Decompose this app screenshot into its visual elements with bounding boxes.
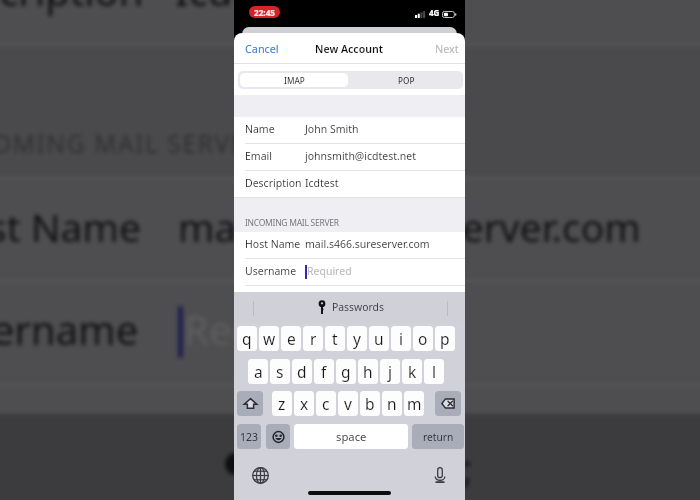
button[interactable]: r (303, 326, 323, 351)
button[interactable]: z (272, 391, 292, 416)
button[interactable]: c (316, 391, 336, 416)
button[interactable]: a (248, 359, 268, 384)
staticText: i (399, 328, 403, 349)
button[interactable]: POP (350, 71, 463, 89)
staticText: Cancel (245, 41, 279, 56)
staticText: b (365, 393, 375, 414)
button[interactable]: Cancel (240, 33, 298, 64)
button[interactable]: Emoji (266, 424, 290, 449)
staticText: Email (245, 149, 272, 163)
staticText: New Account (315, 42, 384, 56)
staticText: h (363, 361, 373, 382)
button[interactable]: u (369, 326, 389, 351)
button[interactable]: Change keyboard (250, 465, 271, 486)
staticText: g (341, 361, 351, 382)
staticText: y (353, 328, 361, 349)
button[interactable]: Shift (237, 391, 263, 416)
staticText: v (344, 393, 352, 414)
staticText: e (287, 328, 296, 349)
button[interactable]: x (294, 391, 314, 416)
staticText: IMAP (284, 75, 305, 86)
staticText: Passwords (332, 300, 384, 314)
staticText: return (423, 430, 454, 444)
button[interactable]: Username (234, 259, 465, 286)
button[interactable]: s (270, 359, 290, 384)
staticText: s (276, 361, 284, 382)
button[interactable]: d (292, 359, 312, 384)
button[interactable]: Dictation (429, 464, 450, 485)
button[interactable]: h (358, 359, 378, 384)
staticText: l (432, 361, 436, 382)
button[interactable]: b (360, 391, 380, 416)
staticText: scription (0, 0, 144, 17)
staticText: ; (462, 440, 473, 494)
staticText: Name (245, 122, 275, 136)
button[interactable]: Passwords (318, 300, 384, 314)
staticText: ername (0, 302, 139, 356)
button[interactable]: k (402, 359, 422, 384)
staticText: 22:45 (254, 7, 276, 18)
button[interactable]: o (413, 326, 433, 351)
button[interactable]: t (325, 326, 345, 351)
staticText: POP (398, 75, 415, 86)
staticText: d (297, 361, 307, 382)
staticText: p (440, 328, 450, 349)
staticText: John Smith (305, 122, 359, 136)
button[interactable]: Description (234, 171, 465, 198)
staticText: INCOMING MAIL SERVER (245, 217, 339, 229)
staticText: Host Name (245, 237, 301, 251)
button[interactable]: m (404, 391, 424, 416)
staticText: 4G (429, 7, 440, 18)
staticText: o (418, 328, 428, 349)
button[interactable]: f (314, 359, 334, 384)
staticText: Username (245, 264, 297, 278)
button[interactable]: w (259, 326, 279, 351)
staticText: Icdtest (305, 176, 339, 190)
button[interactable]: Next (406, 33, 464, 64)
button[interactable]: g (336, 359, 356, 384)
staticText: Description (245, 176, 302, 190)
staticText: Next (435, 41, 459, 56)
staticText: Required (184, 302, 354, 356)
button[interactable]: v (338, 391, 358, 416)
button[interactable]: Name (234, 117, 465, 144)
button[interactable]: Host Name (234, 232, 465, 259)
button[interactable]: j (380, 359, 400, 384)
staticText: Icdtest (175, 0, 303, 17)
staticText: a (254, 361, 263, 382)
button[interactable]: i (391, 326, 411, 351)
button[interactable]: p (435, 326, 455, 351)
staticText: mail.s466.sureserver.com (305, 237, 430, 251)
staticText: z (278, 393, 286, 414)
button[interactable]: 123 (237, 424, 261, 449)
staticText: x (300, 393, 309, 414)
button[interactable]: e (281, 326, 301, 351)
staticText: t (332, 328, 338, 349)
staticText: f (321, 361, 327, 382)
staticText: Required (307, 264, 352, 278)
button[interactable]: return (412, 424, 464, 449)
button[interactable]: Backspace (435, 391, 461, 416)
staticText: space (336, 429, 367, 444)
staticText: w (263, 328, 276, 349)
button[interactable]: y (347, 326, 367, 351)
staticText: n (387, 393, 397, 414)
staticText: j (388, 361, 392, 382)
staticText: q (242, 328, 252, 349)
staticText: 123 (240, 430, 259, 444)
staticText: st Name (0, 200, 141, 253)
staticText: c (322, 393, 330, 414)
staticText: r (310, 328, 317, 349)
staticText: k (408, 361, 417, 382)
staticText: m (407, 393, 422, 414)
staticText: johnsmith@icdtest.net (305, 149, 417, 163)
button[interactable]: IMAP (240, 73, 348, 87)
button[interactable]: space (294, 424, 408, 449)
button[interactable]: Email (234, 144, 465, 171)
button[interactable]: n (382, 391, 402, 416)
staticText: OMING MAIL SERVER (0, 127, 263, 160)
button[interactable]: q (237, 326, 257, 351)
staticText: u (374, 328, 384, 349)
staticText: mail.s466.sureserver.com (178, 200, 641, 253)
button[interactable]: l (424, 359, 444, 384)
